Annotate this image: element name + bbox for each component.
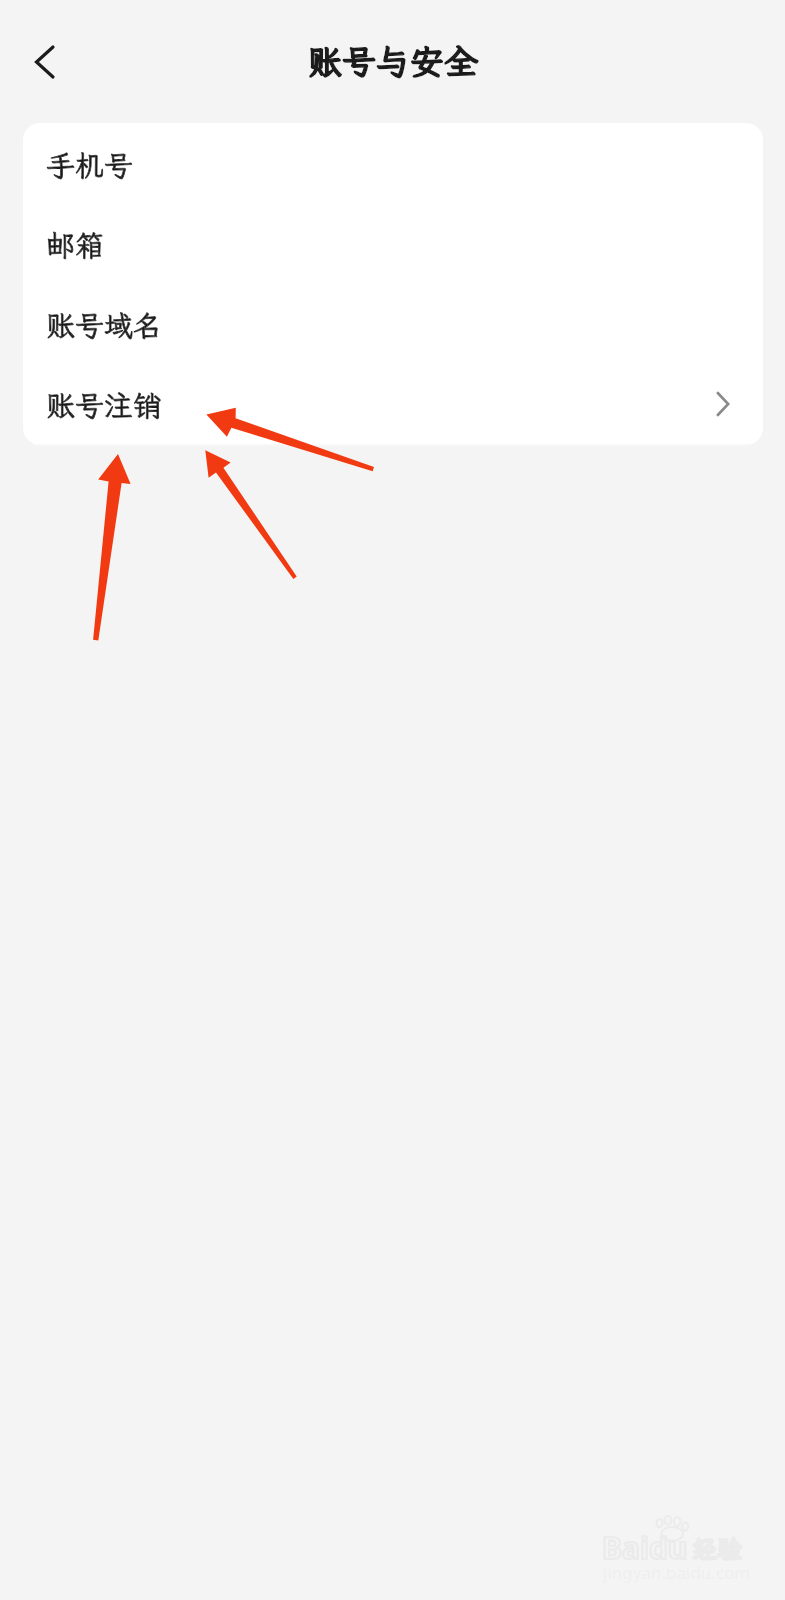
staticText: 邮箱 [46, 226, 105, 264]
staticText: 账号注销 [46, 386, 163, 424]
button[interactable]: 账号注销 [23, 363, 763, 443]
staticText: 邮箱 [46, 226, 105, 264]
staticText: 手机号 [46, 146, 134, 184]
button[interactable]: 账号域名 [23, 283, 763, 363]
staticText: 经验 [692, 1532, 743, 1565]
staticText: 账号域名 [46, 306, 163, 344]
staticText: 账号域名 [46, 306, 163, 344]
staticText: 账号与安全 [308, 39, 478, 84]
button[interactable]: 邮箱 [23, 203, 763, 283]
staticText: 账号注销 [46, 386, 163, 424]
staticText: Baidu [602, 1527, 688, 1568]
button[interactable]: 手机号 [23, 123, 763, 203]
staticText: 手机号 [46, 146, 134, 184]
button[interactable]: Back [16, 38, 76, 86]
staticText: 账号与安全 [308, 39, 478, 84]
